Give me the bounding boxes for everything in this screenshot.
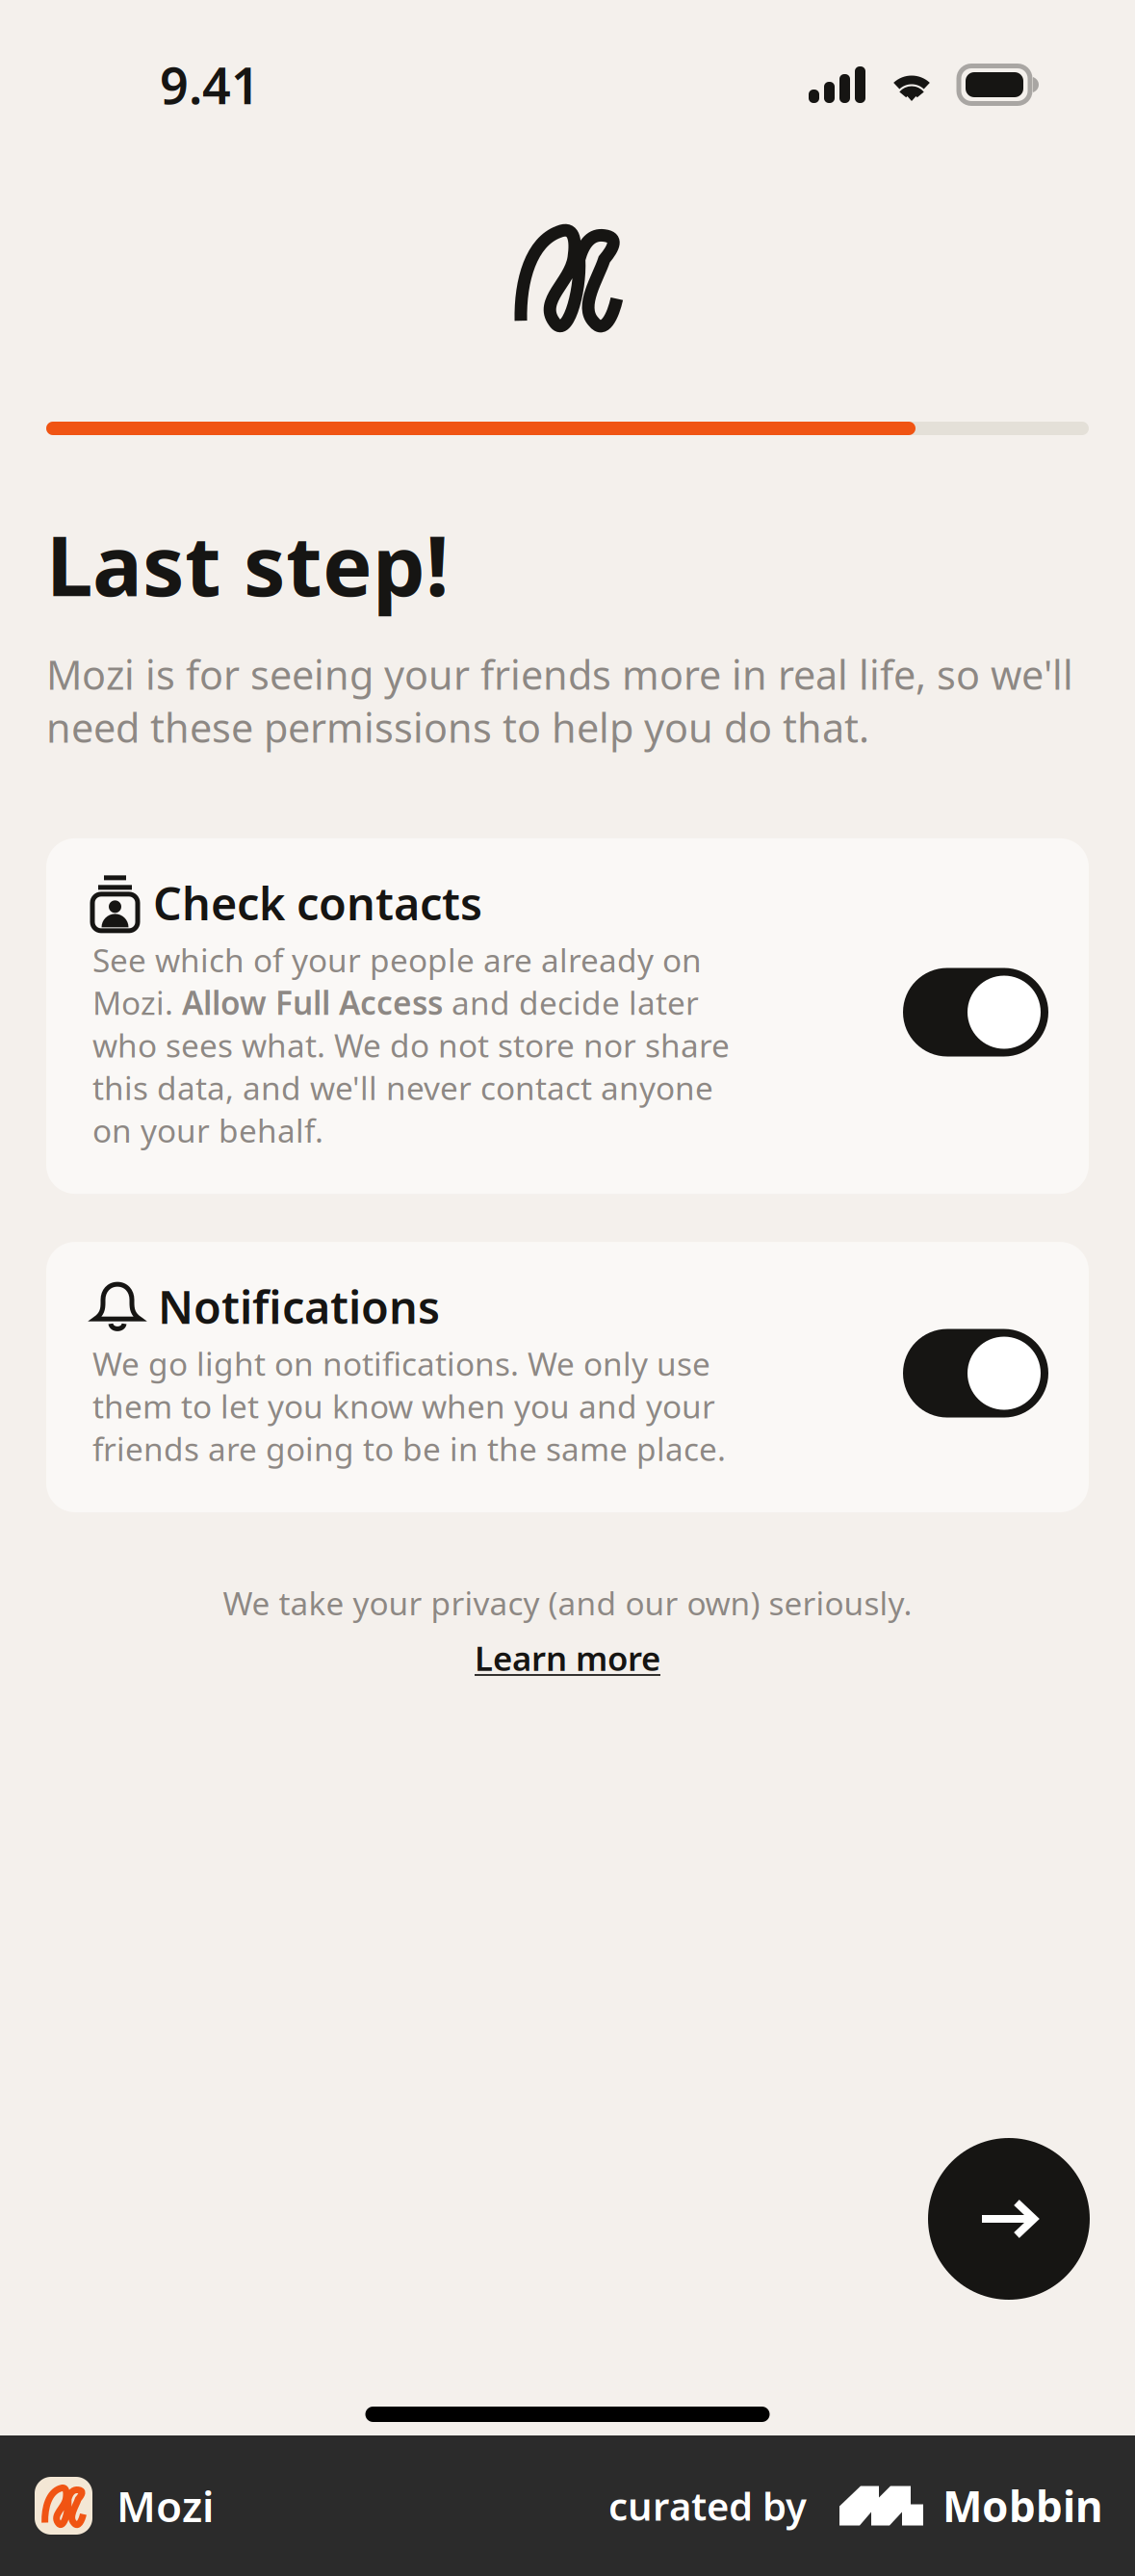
staticText: Mozi <box>116 2478 214 2534</box>
staticText: We take your privacy (and our own) serio… <box>223 1582 912 1624</box>
button[interactable]: Continue <box>928 2138 1090 2300</box>
staticText: We go light on notifications. We only us… <box>92 1342 726 1470</box>
staticText: Mobbin <box>942 2478 1103 2534</box>
staticText: See which of your people are already on … <box>92 938 730 1151</box>
staticText: Last step! <box>46 508 449 619</box>
staticText: Mozi is for seeing your friends more in … <box>46 648 1073 754</box>
button[interactable]: Learn more <box>475 1636 660 1680</box>
staticText: Notifications <box>158 1277 440 1336</box>
staticText: 9.41 <box>160 52 260 118</box>
staticText: Learn more <box>475 1636 660 1680</box>
staticText: curated by <box>608 2480 807 2531</box>
staticText: Check contacts <box>153 873 482 933</box>
button[interactable]: Notifications <box>903 1329 1048 1417</box>
button[interactable]: Check contacts <box>903 968 1048 1056</box>
